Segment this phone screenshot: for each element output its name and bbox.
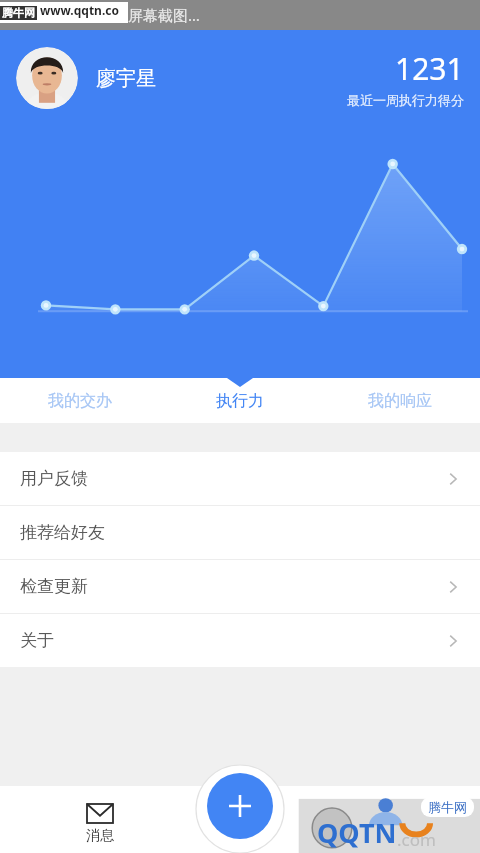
staticText: 腾牛网: [428, 799, 467, 815]
staticText: 我的交办: [48, 391, 112, 411]
staticText: 廖宇星: [96, 66, 156, 91]
button[interactable]: 我的交办: [0, 378, 160, 423]
button[interactable]: 检查更新: [0, 560, 480, 613]
staticText: 检查更新: [20, 576, 88, 597]
staticText: 我的响应: [368, 391, 432, 411]
staticText: 用户反馈: [20, 468, 88, 489]
button[interactable]: 执行力: [160, 378, 320, 423]
staticText: 屏幕截图…: [128, 5, 200, 25]
staticText: 执行力: [216, 391, 264, 411]
staticText: QQTN: [317, 814, 397, 851]
button[interactable]: 关于: [0, 614, 480, 667]
button[interactable]: 推荐给好友: [0, 506, 480, 559]
staticText: 消息: [86, 827, 114, 845]
staticText: 最近一周执行力得分: [347, 92, 464, 108]
button[interactable]: 用户反馈: [0, 452, 480, 505]
staticText: .com: [397, 828, 436, 851]
button[interactable]: 我的响应: [320, 378, 480, 423]
staticText: 推荐给好友: [20, 522, 105, 543]
button[interactable]: 消息: [68, 804, 132, 845]
button[interactable]: Add: [207, 773, 273, 839]
staticText: 腾牛网: [2, 6, 35, 20]
staticText: 1231: [395, 48, 464, 89]
staticText: 关于: [20, 630, 54, 651]
staticText: www.qqtn.com: [40, 2, 128, 23]
